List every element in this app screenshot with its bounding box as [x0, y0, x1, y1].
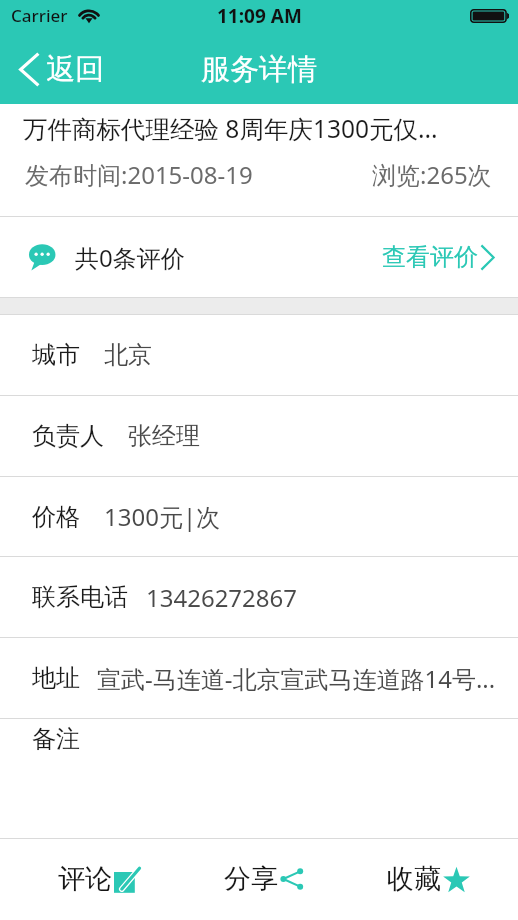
button[interactable]: 联系电话 — [0, 557, 518, 637]
staticText: 共0条评价 — [75, 241, 185, 274]
staticText: 13426272867 — [146, 581, 298, 614]
button[interactable]: 价格 — [0, 477, 518, 556]
button[interactable]: 分享 — [181, 839, 346, 919]
staticText: 评论 — [58, 862, 112, 896]
staticText: 张经理 — [128, 421, 200, 451]
staticText: 返回 — [46, 51, 104, 88]
button[interactable]: 地址 — [0, 638, 518, 718]
button[interactable]: 负责人 — [0, 396, 518, 476]
staticText: 11:09 AM — [217, 3, 302, 29]
staticText: 查看评价 — [382, 242, 478, 272]
button[interactable]: 返回 — [0, 43, 116, 96]
staticText: 城市 — [32, 340, 80, 370]
button[interactable]: 收藏 — [346, 839, 511, 919]
staticText: 负责人 — [32, 421, 104, 451]
staticText: 宣武-马连道-北京宣武马连道路14号... — [97, 662, 496, 695]
staticText: Carrier — [11, 4, 68, 27]
staticText: 地址 — [32, 663, 80, 693]
staticText: 服务详情 — [201, 51, 317, 88]
staticText: 浏览:265次 — [372, 158, 492, 191]
other: 返回 — [19, 52, 40, 87]
staticText: 1300元|次 — [104, 500, 221, 533]
button[interactable]: 共0条评价 — [0, 217, 518, 297]
staticText: 北京 — [104, 340, 152, 370]
button[interactable]: 评论 — [16, 839, 181, 919]
staticText: 联系电话 — [32, 582, 128, 612]
staticText: 发布时间:2015-08-19 — [25, 158, 253, 191]
button[interactable]: 城市 — [0, 315, 518, 395]
staticText: 万件商标代理经验 8周年庆1300元仅... — [23, 112, 438, 145]
staticText: 分享 — [224, 862, 278, 896]
staticText: 备注 — [32, 724, 80, 754]
staticText: 收藏 — [387, 862, 441, 896]
staticText: 价格 — [32, 502, 80, 532]
